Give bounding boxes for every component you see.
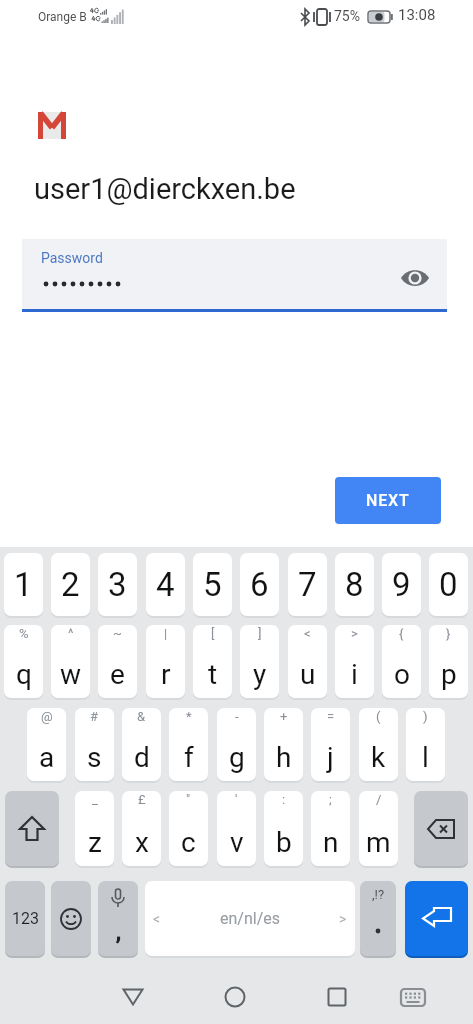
staticText: Orange B [38, 10, 87, 24]
button[interactable] [405, 881, 468, 956]
button[interactable]: 2 [51, 553, 90, 616]
button[interactable]: £ [122, 791, 161, 866]
button[interactable]: NEXT [335, 477, 441, 524]
staticText: 6 [250, 565, 269, 604]
button[interactable]: _ [75, 791, 114, 866]
button[interactable]: 1 [4, 553, 43, 616]
staticText: 0 [439, 565, 458, 604]
button[interactable]: ' [217, 791, 256, 866]
button[interactable]: 9 [382, 553, 421, 616]
button[interactable]: " [169, 791, 208, 866]
button[interactable]: 7 [288, 553, 327, 616]
staticText: y [253, 658, 267, 691]
staticText: } [446, 626, 451, 641]
staticText: 2 [61, 565, 80, 604]
staticText: < [304, 626, 311, 641]
staticText: x [135, 826, 149, 859]
staticText: 9 [392, 565, 411, 604]
staticText: # [90, 709, 99, 724]
staticText: en/nl/es [220, 909, 280, 928]
button[interactable]: , [98, 881, 138, 956]
button[interactable]: @ [27, 708, 66, 781]
staticText: l [422, 741, 429, 774]
button[interactable] [51, 881, 91, 956]
button[interactable]: ,!? [360, 881, 396, 956]
button[interactable]: ; [311, 791, 350, 866]
staticText: w [60, 658, 82, 691]
button[interactable]: & [122, 708, 161, 781]
button[interactable]: + [264, 708, 303, 781]
staticText: { [399, 626, 404, 641]
button[interactable]: Password [22, 239, 447, 309]
button[interactable]: ] [240, 625, 279, 698]
staticText: k [371, 741, 386, 774]
button[interactable]: / [359, 791, 398, 866]
staticText: v [230, 826, 244, 859]
staticText: b [276, 826, 292, 859]
staticText: a [39, 741, 55, 774]
button[interactable]: } [429, 625, 468, 698]
staticText: > [351, 626, 358, 641]
staticText: r [161, 658, 171, 691]
staticText: / [376, 792, 382, 807]
staticText: ' [235, 792, 238, 807]
button[interactable]: : [264, 791, 303, 866]
staticText: * [186, 709, 192, 724]
button[interactable]: % [4, 625, 43, 698]
button[interactable]: ) [406, 708, 445, 781]
staticText: u [300, 658, 316, 691]
staticText: 8 [345, 565, 364, 604]
button[interactable]: - [217, 708, 256, 781]
staticText: NEXT [366, 491, 410, 510]
staticText: , [116, 920, 121, 946]
staticText: 123 [12, 909, 39, 928]
button[interactable]: { [382, 625, 421, 698]
button[interactable] [113, 977, 153, 1017]
button[interactable]: [ [193, 625, 232, 698]
button[interactable]: | [146, 625, 185, 698]
button[interactable]: 5 [193, 553, 232, 616]
button[interactable]: = [311, 708, 350, 781]
staticText: e [110, 658, 125, 691]
button[interactable]: # [75, 708, 114, 781]
button[interactable]: 6 [240, 553, 279, 616]
staticText: < [153, 911, 161, 927]
button[interactable] [317, 977, 357, 1017]
staticText: = [327, 709, 335, 724]
staticText: ] [258, 626, 262, 641]
staticText: ) [423, 709, 428, 724]
button[interactable] [5, 791, 59, 866]
staticText: f [184, 741, 194, 774]
button[interactable]: * [169, 708, 208, 781]
staticText: ^ [68, 626, 74, 641]
button[interactable]: > [335, 625, 374, 698]
staticText: 75% [334, 8, 360, 24]
button[interactable] [393, 256, 437, 300]
button[interactable]: ^ [51, 625, 90, 698]
staticText: h [276, 741, 292, 774]
button[interactable] [396, 981, 430, 1013]
button[interactable]: 0 [429, 553, 468, 616]
staticText: > [339, 911, 347, 927]
staticText: : [282, 792, 286, 807]
button[interactable]: ~ [98, 625, 137, 698]
button[interactable] [414, 791, 468, 866]
staticText: " [186, 792, 191, 807]
staticText: 3 [108, 565, 127, 604]
staticText: _ [92, 792, 98, 807]
button[interactable]: 3 [98, 553, 137, 616]
staticText: 7 [298, 565, 317, 604]
button[interactable] [215, 977, 255, 1017]
button[interactable]: 4 [146, 553, 185, 616]
staticText: m [366, 826, 391, 859]
staticText: ,!? [372, 887, 385, 902]
button[interactable]: < [288, 625, 327, 698]
button[interactable]: 8 [335, 553, 374, 616]
button[interactable]: en/nl/es [145, 881, 355, 956]
staticText: Password [41, 250, 103, 266]
button[interactable]: ( [359, 708, 398, 781]
button[interactable]: 123 [5, 881, 45, 956]
staticText: i [351, 658, 358, 691]
staticText: q [16, 658, 32, 691]
staticText: 5 [203, 565, 222, 604]
